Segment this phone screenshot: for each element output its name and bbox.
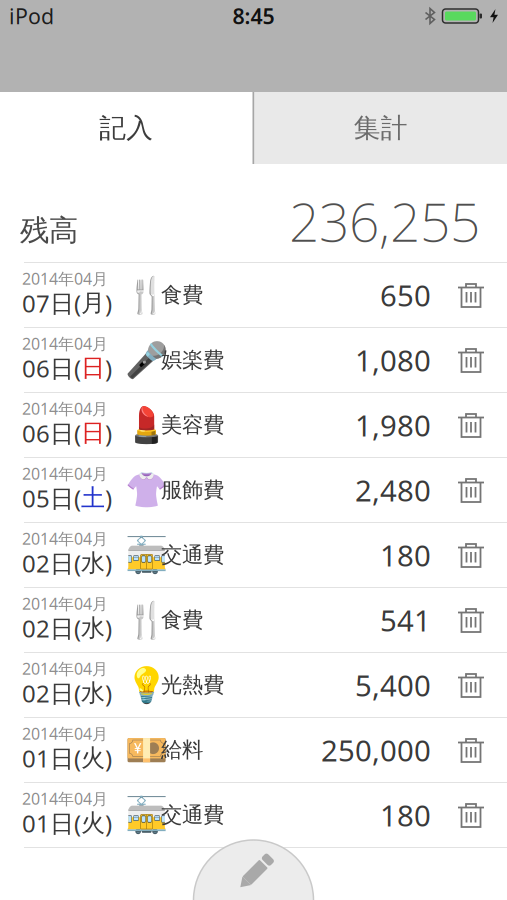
- staticText: ): [105, 417, 112, 449]
- button[interactable]: 記入: [0, 92, 252, 164]
- staticText: 👚: [124, 470, 167, 510]
- staticText: 541: [380, 600, 431, 639]
- staticText: 服飾費: [161, 477, 224, 503]
- staticText: 2014年04月: [22, 398, 108, 419]
- button[interactable]: 削除: [431, 281, 507, 308]
- staticText: 2014年04月: [22, 593, 108, 614]
- button[interactable]: 集計: [254, 92, 507, 164]
- staticText: 交通費: [161, 802, 224, 828]
- staticText: 火: [81, 743, 105, 773]
- staticText: ): [105, 352, 112, 384]
- staticText: 交通費: [161, 542, 224, 568]
- staticText: 02日(: [22, 677, 81, 709]
- staticText: ): [105, 482, 112, 514]
- staticText: 日: [81, 353, 105, 383]
- button[interactable]: 削除: [431, 346, 507, 373]
- staticText: 集計: [354, 112, 408, 144]
- staticText: 月: [81, 288, 105, 318]
- staticText: ): [105, 287, 112, 319]
- staticText: ): [105, 677, 112, 709]
- staticText: 05日(: [22, 482, 81, 514]
- staticText: 水: [81, 613, 105, 643]
- button[interactable]: 削除: [431, 801, 507, 828]
- staticText: 🎤: [124, 340, 167, 380]
- staticText: 日: [81, 418, 105, 448]
- staticText: 給料: [161, 737, 203, 763]
- staticText: 💴: [124, 730, 167, 770]
- staticText: ): [105, 612, 112, 644]
- button[interactable]: 削除: [431, 736, 507, 763]
- button[interactable]: 削除: [431, 606, 507, 633]
- button[interactable]: 削除: [431, 671, 507, 698]
- staticText: 娯楽費: [161, 347, 224, 373]
- staticText: ): [105, 547, 112, 579]
- staticText: 2014年04月: [22, 723, 108, 744]
- staticText: 8:45: [232, 2, 274, 30]
- staticText: 1,980: [355, 405, 431, 444]
- staticText: iPod: [9, 2, 54, 30]
- staticText: 2014年04月: [22, 333, 108, 354]
- staticText: 火: [81, 808, 105, 838]
- staticText: 07日(: [22, 287, 81, 319]
- staticText: 250,000: [321, 730, 431, 769]
- staticText: 02日(: [22, 547, 81, 579]
- button[interactable]: 削除: [431, 541, 507, 568]
- staticText: 2014年04月: [22, 528, 108, 549]
- staticText: 01日(: [22, 807, 81, 839]
- staticText: 01日(: [22, 742, 81, 774]
- staticText: 2014年04月: [22, 268, 108, 289]
- staticText: ): [105, 742, 112, 774]
- staticText: 236,255: [289, 186, 480, 256]
- staticText: 1,080: [355, 340, 431, 379]
- staticText: 残高: [20, 212, 78, 248]
- staticText: 土: [81, 483, 105, 513]
- staticText: 記入: [99, 112, 153, 144]
- staticText: 🚋: [124, 535, 167, 575]
- staticText: ): [105, 807, 112, 839]
- staticText: 2014年04月: [22, 788, 108, 809]
- staticText: 5,400: [355, 665, 431, 704]
- staticText: 食費: [161, 607, 203, 633]
- staticText: 🚋: [124, 795, 167, 835]
- staticText: 水: [81, 678, 105, 708]
- button[interactable]: 記入する: [193, 840, 313, 900]
- staticText: 光熱費: [161, 672, 224, 698]
- button[interactable]: 削除: [431, 476, 507, 503]
- staticText: 食費: [161, 282, 203, 308]
- staticText: 💡: [124, 665, 167, 705]
- staticText: 06日(: [22, 352, 81, 384]
- staticText: 02日(: [22, 612, 81, 644]
- staticText: 2,480: [355, 470, 431, 509]
- staticText: 180: [380, 795, 431, 834]
- staticText: 美容費: [161, 412, 224, 438]
- staticText: 🍴: [124, 600, 167, 640]
- staticText: 水: [81, 548, 105, 578]
- staticText: 2014年04月: [22, 463, 108, 484]
- staticText: 2014年04月: [22, 658, 108, 679]
- staticText: 06日(: [22, 417, 81, 449]
- staticText: 🍴: [124, 275, 167, 315]
- staticText: 💄: [124, 405, 167, 445]
- button[interactable]: 削除: [431, 411, 507, 438]
- staticText: 180: [380, 535, 431, 574]
- staticText: 650: [380, 275, 431, 314]
